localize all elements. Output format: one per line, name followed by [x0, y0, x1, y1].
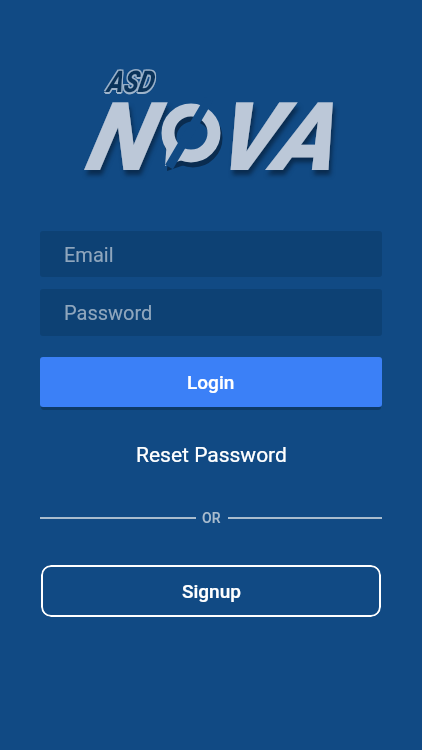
- button[interactable]: Signup: [41, 565, 381, 617]
- staticText: ASD: [106, 66, 153, 101]
- staticText: OR: [202, 510, 221, 526]
- staticText: Login: [187, 371, 235, 393]
- button[interactable]: Login: [40, 357, 382, 407]
- staticText: Signup: [182, 580, 241, 602]
- staticText: Reset Password: [136, 443, 287, 468]
- staticText: ASD: [106, 64, 153, 99]
- staticText: VA: [213, 82, 334, 193]
- staticText: N: [84, 82, 149, 193]
- button[interactable]: Email: [40, 231, 382, 277]
- staticText: Password: [64, 301, 153, 324]
- staticText: ASD: [105, 65, 152, 100]
- staticText: Email: [64, 243, 114, 266]
- staticText: ASD: [107, 65, 154, 100]
- button[interactable]: Password: [40, 289, 382, 336]
- staticText: ASD: [107, 63, 154, 98]
- button[interactable]: Reset Password: [0, 440, 422, 470]
- staticText: ASD: [105, 63, 152, 98]
